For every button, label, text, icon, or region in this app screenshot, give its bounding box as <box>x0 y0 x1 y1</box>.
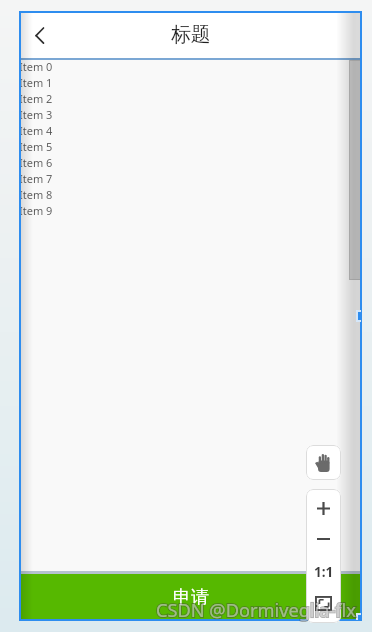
button[interactable]: Item 4 <box>19 122 362 138</box>
button[interactable]: 1:1 <box>306 556 341 588</box>
button[interactable]: Item 8 <box>19 186 362 202</box>
staticText: Item 0 <box>19 59 53 74</box>
button[interactable]: Zoom out <box>306 523 341 555</box>
staticText: Item 8 <box>19 187 53 202</box>
staticText: Item 7 <box>19 171 53 186</box>
button[interactable]: Pan <box>306 445 341 480</box>
button[interactable]: Scroll <box>349 60 362 280</box>
staticText: CSDN @Dormiveglia-flx <box>156 598 356 623</box>
button[interactable]: Item 5 <box>19 138 362 154</box>
button[interactable]: Item 3 <box>19 106 362 122</box>
button[interactable]: Item 2 <box>19 90 362 106</box>
staticText: Item 3 <box>19 107 53 122</box>
button[interactable]: Item 7 <box>19 170 362 186</box>
staticText: 1:1 <box>314 563 334 581</box>
button[interactable]: Item 9 <box>19 202 362 218</box>
staticText: Item 4 <box>19 123 53 138</box>
staticText: 标题 <box>171 22 211 47</box>
staticText: Item 2 <box>19 91 53 106</box>
button[interactable]: Back <box>27 23 51 47</box>
staticText: Item 9 <box>19 203 53 218</box>
button[interactable]: Item 0 <box>19 58 362 74</box>
staticText: CSDN @Dormiveglia-flx <box>156 598 356 623</box>
button[interactable]: Zoom in <box>306 491 341 525</box>
staticText: Item 6 <box>19 155 53 170</box>
button[interactable]: 申请 <box>19 574 362 621</box>
button[interactable]: Zoom to fit <box>306 587 341 619</box>
button[interactable]: Item 1 <box>19 74 362 90</box>
staticText: 申请 <box>173 586 209 609</box>
button[interactable]: Item 6 <box>19 154 362 170</box>
staticText: Item 5 <box>19 139 53 154</box>
staticText: Item 1 <box>19 75 53 90</box>
